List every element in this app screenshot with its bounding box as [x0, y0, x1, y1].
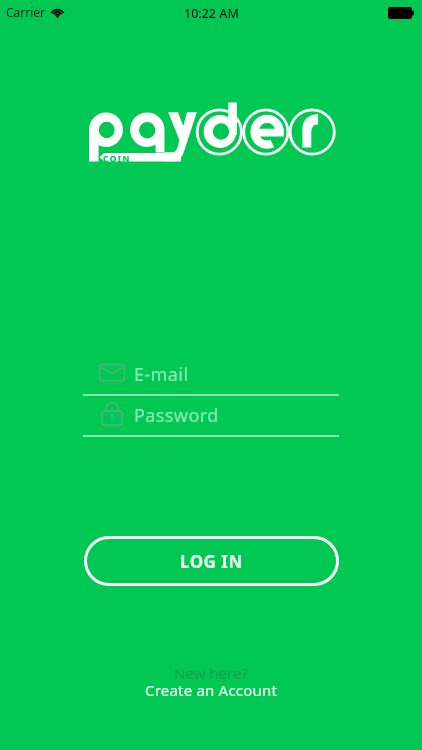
staticText: Password	[134, 403, 219, 428]
staticText: Carrier	[6, 4, 46, 20]
button[interactable]: Password	[83, 399, 339, 435]
staticText: COIN WALLET	[103, 153, 175, 162]
staticText: 10:22 AM	[184, 5, 239, 22]
staticText: New here?	[174, 663, 248, 683]
staticText: Create an Account	[145, 680, 278, 700]
button[interactable]: E-mail	[83, 358, 339, 394]
staticText: E-mail	[134, 362, 189, 387]
button[interactable]: Create an Account	[0, 679, 422, 701]
button[interactable]: LOG IN	[84, 536, 339, 586]
staticText: LOG IN	[180, 550, 243, 573]
